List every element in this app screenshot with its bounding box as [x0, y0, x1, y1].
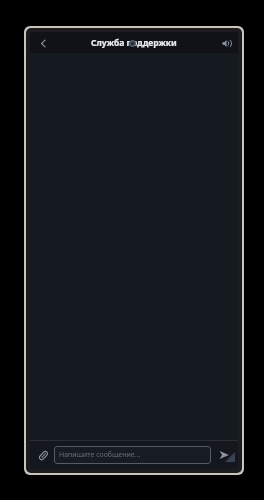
button[interactable]: Back	[34, 34, 52, 52]
button[interactable]: Напишите сообщение...	[54, 446, 211, 464]
button[interactable]: Attach file	[35, 447, 51, 463]
button[interactable]: Служба поддержки	[91, 37, 177, 49]
staticText: Служба поддержки	[91, 37, 177, 49]
staticText: Напишите сообщение...	[59, 450, 141, 460]
button[interactable]: Send	[215, 446, 233, 464]
button[interactable]: Sound	[218, 35, 234, 51]
